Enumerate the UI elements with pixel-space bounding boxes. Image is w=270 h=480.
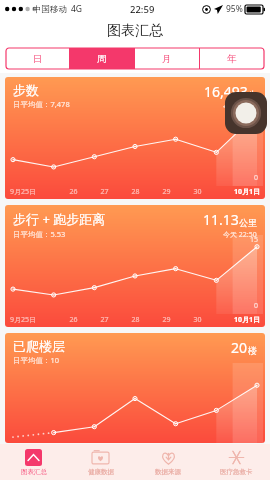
staticText: 11.13 [203,210,239,229]
staticText: 日 [33,53,43,65]
button[interactable]: 月 [135,48,199,69]
staticText: 图表汇总 [21,468,47,476]
staticText: 22:59 [130,3,155,16]
staticText: 今天 22:50 [223,230,257,240]
staticText: 步行 + 跑步距离 [13,210,106,228]
staticText: 15 [250,235,259,245]
button[interactable]: 年 [200,48,264,69]
button[interactable]: 图表汇总 [0,444,67,480]
staticText: 步 [248,89,257,100]
staticText: 今天 22:50 [223,102,257,112]
button[interactable]: 健康数据 [67,444,134,480]
button[interactable]: 已爬楼层 [5,333,265,443]
staticText: 28 [120,187,151,197]
staticText: 10月1日 [213,315,260,325]
staticText: 95% [226,3,243,15]
staticText: 9月25日 [10,187,58,197]
staticText: 图表汇总 [107,22,163,40]
staticText: 30 [182,187,213,197]
button[interactable]: 日 [6,48,69,69]
button[interactable]: 数据来源 [134,444,202,480]
staticText: 步数 [13,82,39,98]
staticText: 年 [227,53,237,65]
staticText: 20 [231,338,248,357]
button[interactable]: 步行 + 跑步距离 [5,205,265,327]
staticText: 9月25日 [10,315,58,325]
staticText: 28 [120,315,151,325]
staticText: 4G [71,3,83,15]
staticText: 27 [89,187,120,197]
button[interactable]: 周 [70,48,134,69]
staticText: 中国移动 [33,4,67,15]
staticText: 30 [182,315,213,325]
button[interactable]: AssistiveTouch [225,92,267,134]
staticText: 29 [151,187,182,197]
staticText: 16,493 [204,82,248,101]
staticText: 健康数据 [88,468,114,476]
staticText: 26 [58,315,89,325]
staticText: 0 [254,173,259,183]
staticText: 20,000 [237,107,259,117]
staticText: 26 [58,187,89,197]
staticText: 0 [254,301,259,311]
staticText: 数据来源 [155,468,181,476]
staticText: 日平均值：10 [13,355,60,365]
staticText: 10月1日 [213,187,260,197]
staticText: 楼 [248,345,257,356]
staticText: 医疗急救卡 [220,468,253,476]
staticText: 日平均值：5.53 [13,229,66,239]
staticText: 月 [162,53,172,65]
staticText: 29 [151,315,182,325]
button[interactable]: 步数 [5,77,265,199]
staticText: 27 [89,315,120,325]
staticText: 周 [97,53,107,65]
staticText: 日平均值：7,478 [13,99,70,109]
button[interactable]: 医疗急救卡 [202,444,270,480]
staticText: 已爬楼层 [13,338,65,354]
staticText: 公里 [239,217,257,228]
